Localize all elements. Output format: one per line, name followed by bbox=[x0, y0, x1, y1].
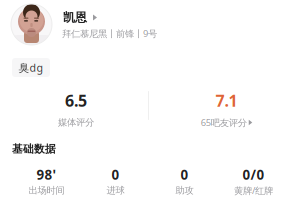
button[interactable]: 7.1 bbox=[151, 94, 300, 127]
staticText: 媒体评分 bbox=[58, 117, 94, 128]
staticText: 0 bbox=[111, 166, 119, 183]
button[interactable]: 凯恩 bbox=[11, 4, 289, 48]
staticText: 进球 bbox=[106, 185, 124, 196]
staticText: 出场时间 bbox=[28, 185, 64, 196]
staticText: 6.5 bbox=[65, 90, 87, 111]
staticText: 65吧友评分 bbox=[201, 116, 247, 129]
staticText: 0 bbox=[180, 166, 188, 183]
button[interactable]: 臭dg bbox=[12, 58, 50, 77]
staticText: 凯恩 bbox=[63, 10, 87, 25]
staticText: 臭dg bbox=[18, 60, 43, 75]
staticText: 黄牌/红牌 bbox=[234, 184, 273, 197]
staticText: 拜仁慕尼黑丨前锋丨9号 bbox=[62, 27, 157, 40]
staticText: 7.1 bbox=[215, 90, 237, 111]
staticText: 98' bbox=[36, 166, 56, 183]
staticText: 基础数据 bbox=[12, 142, 56, 155]
staticText: 0/0 bbox=[242, 166, 264, 183]
staticText: 助攻 bbox=[175, 185, 193, 196]
